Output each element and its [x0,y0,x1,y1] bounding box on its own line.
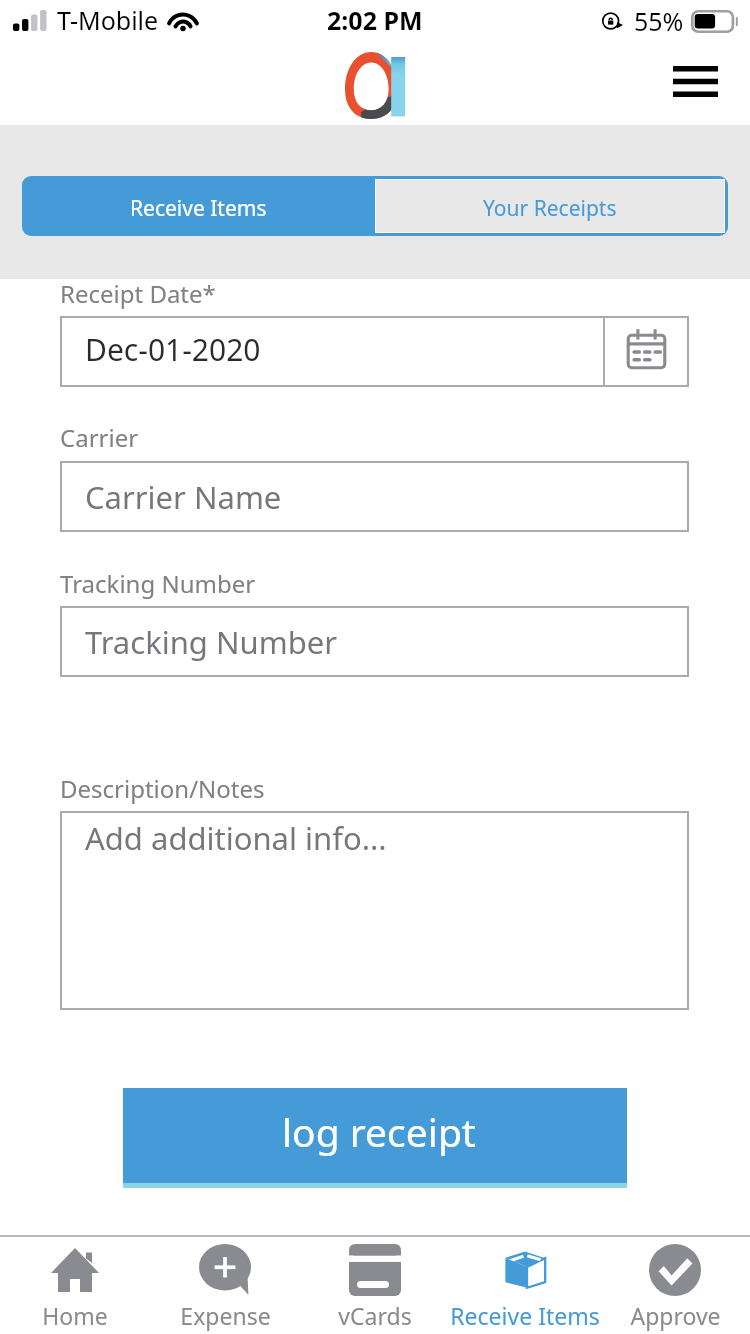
staticText: Your Receipts [483,194,617,223]
button[interactable]: Receive Items [22,176,375,236]
button[interactable]: Menu [662,48,728,114]
button[interactable]: Your Receipts [375,176,728,236]
staticText: Carrier Name [85,476,282,518]
staticText: Expense [180,1300,271,1331]
staticText: 55% [634,4,684,38]
button[interactable]: Approve [600,1237,750,1334]
staticText: Tracking Number [85,621,338,663]
staticText: Receive Items [450,1300,600,1331]
staticText: Description/Notes [60,772,265,805]
staticText: Tracking Number [60,567,256,600]
staticText: Receive Items [130,194,267,223]
staticText: 2:02 PM [327,3,423,37]
button[interactable]: Home [0,1237,150,1334]
button[interactable]: Expense [150,1237,300,1334]
staticText: Receipt Date* [60,277,216,310]
staticText: Approve [630,1300,721,1331]
button[interactable]: Tracking Number [60,606,689,677]
button[interactable]: vCards [300,1237,450,1334]
staticText: T-Mobile [57,3,159,37]
button[interactable]: Receive Items [450,1237,600,1334]
staticText: log receipt [282,1105,476,1158]
staticText: Dec-01-2020 [85,329,261,370]
staticText: Home [42,1300,108,1331]
button[interactable]: log receipt [123,1088,627,1188]
button[interactable]: Pick date [603,316,689,387]
staticText: Add additional info... [85,817,387,859]
staticText: Carrier [60,421,139,454]
button[interactable]: Add additional info... [60,811,689,1010]
staticText: vCards [338,1300,412,1331]
button[interactable]: Dec-01-2020 [60,316,689,387]
button[interactable]: Carrier Name [60,461,689,532]
